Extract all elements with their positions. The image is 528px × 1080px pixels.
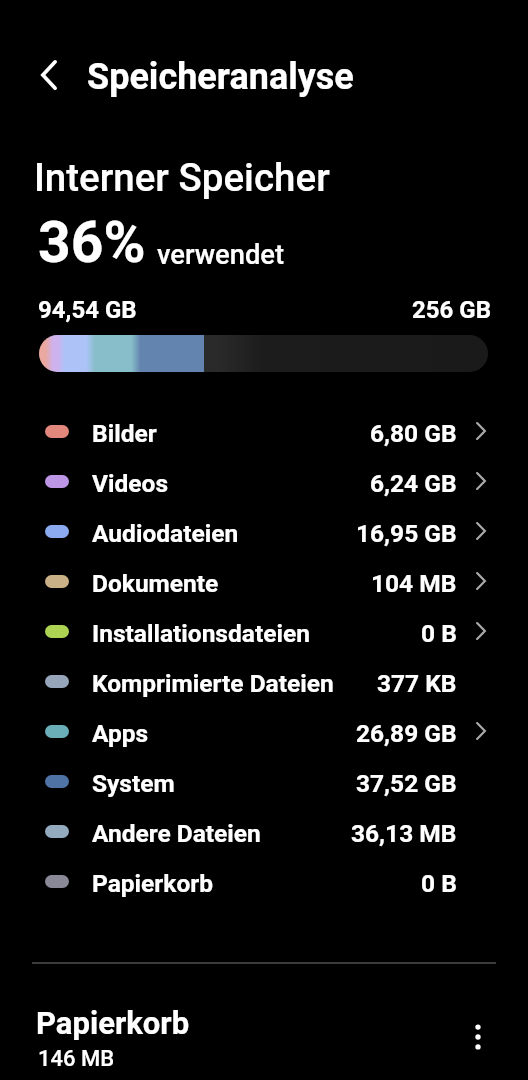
staticText: Papierkorb (36, 1005, 190, 1041)
staticText: 94,54 GB (38, 296, 137, 324)
button[interactable]: Dokumente (0, 556, 528, 606)
staticText: Komprimierte Dateien (92, 669, 334, 698)
staticText: Videos (92, 469, 169, 498)
staticText: Andere Dateien (92, 819, 261, 848)
staticText: 6,24 GB (370, 469, 457, 498)
staticText: Interner Speicher (34, 155, 330, 200)
staticText: 36,13 MB (351, 819, 457, 848)
staticText: 37,52 GB (356, 769, 457, 798)
button[interactable]: Installationsdateien (0, 606, 528, 656)
button[interactable]: Videos (0, 456, 528, 506)
staticText: Papierkorb (92, 869, 213, 898)
staticText: 146 MB (38, 1046, 115, 1072)
button[interactable]: Papierkorb (0, 856, 528, 906)
button[interactable]: Andere Dateien (0, 806, 528, 856)
button[interactable]: Komprimierte Dateien (0, 656, 528, 706)
staticText: 104 MB (371, 569, 457, 598)
staticText: 0 B (421, 619, 457, 648)
staticText: System (92, 769, 175, 798)
staticText: 256 GB (412, 296, 491, 324)
staticText: Dokumente (92, 569, 219, 598)
staticText: Speicheranalyse (87, 56, 354, 98)
staticText: Bilder (92, 419, 157, 448)
staticText: 26,89 GB (356, 719, 457, 748)
staticText: Installationsdateien (92, 619, 310, 648)
staticText: Audiodateien (92, 519, 239, 548)
staticText: Apps (92, 719, 149, 748)
button[interactable]: System (0, 756, 528, 806)
button[interactable]: Back (21, 47, 77, 103)
staticText: 377 KB (377, 669, 457, 698)
staticText: 36% (38, 209, 146, 276)
button[interactable]: More options (450, 1009, 506, 1065)
button[interactable]: Apps (0, 706, 528, 756)
staticText: 0 B (421, 869, 457, 898)
staticText: 6,80 GB (370, 419, 457, 448)
button[interactable]: Audiodateien (0, 506, 528, 556)
staticText: verwendet (157, 239, 285, 271)
button[interactable]: Bilder (0, 406, 528, 456)
staticText: 16,95 GB (356, 519, 457, 548)
